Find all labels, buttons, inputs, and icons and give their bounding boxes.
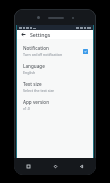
button[interactable]: Text size xyxy=(17,78,93,96)
button[interactable]: Language xyxy=(17,60,93,78)
button[interactable]: Back xyxy=(77,162,86,171)
staticText: v1.0 xyxy=(23,106,30,111)
button[interactable]: Navigate up xyxy=(20,31,27,38)
button[interactable]: Notification xyxy=(17,42,93,60)
staticText: Select the text size xyxy=(23,88,55,93)
button[interactable]: Home xyxy=(51,162,60,171)
staticText: Notification xyxy=(23,45,49,51)
button[interactable]: App version xyxy=(17,96,93,114)
button[interactable]: Toggle notification xyxy=(82,48,89,55)
button[interactable]: Recent apps xyxy=(24,162,33,171)
staticText: Settings xyxy=(30,31,51,38)
staticText: Language xyxy=(23,63,45,69)
staticText: Text size xyxy=(23,81,42,87)
staticText: App version xyxy=(23,99,50,105)
staticText: Turn on/off notification xyxy=(23,52,63,57)
staticText: English xyxy=(23,70,36,75)
